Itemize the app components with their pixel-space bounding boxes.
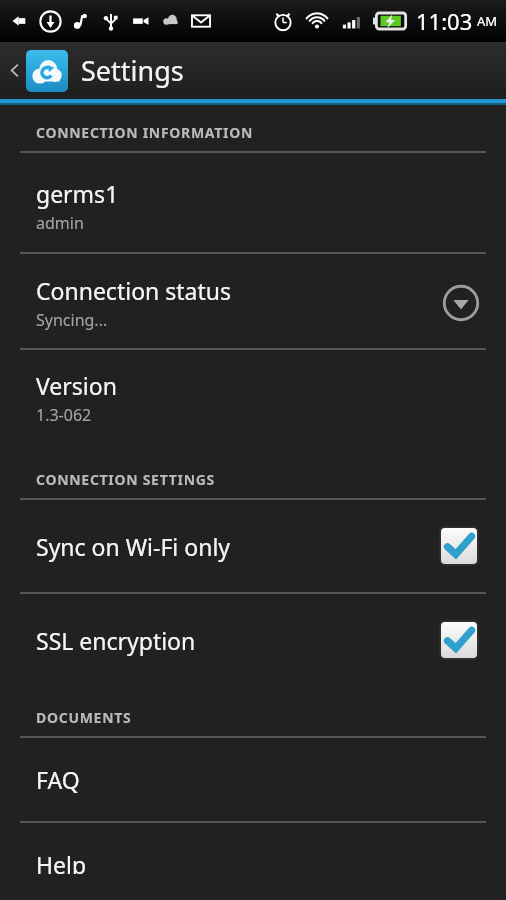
staticText: AM [477,12,498,30]
staticText: admin [36,212,84,234]
staticText: CONNECTION INFORMATION [36,123,254,142]
button[interactable]: SSL encryption [0,594,506,686]
staticText: Settings [81,52,184,89]
button[interactable]: germs1 [0,153,506,252]
staticText: SSL encryption [36,625,439,656]
staticText: Sync on Wi-Fi only [36,531,439,562]
button[interactable]: Expand connection status [442,284,480,322]
staticText: 11:03 [416,6,473,36]
button[interactable]: FAQ [0,738,506,821]
staticText: Connection status [36,275,231,306]
button[interactable]: Sync on Wi-Fi only [0,500,506,592]
button[interactable]: Help [0,823,506,900]
staticText: germs1 [36,178,119,209]
staticText: DOCUMENTS [36,708,132,727]
button[interactable]: Version [0,350,506,442]
button[interactable]: Navigate up, Settings [0,42,506,99]
staticText: Version [36,370,117,401]
staticText: 1.3-062 [36,404,92,426]
staticText: Syncing... [36,309,108,331]
button[interactable]: Connection status [0,254,506,348]
staticText: Help [36,849,87,874]
staticText: FAQ [36,764,80,795]
staticText: CONNECTION SETTINGS [36,470,215,489]
